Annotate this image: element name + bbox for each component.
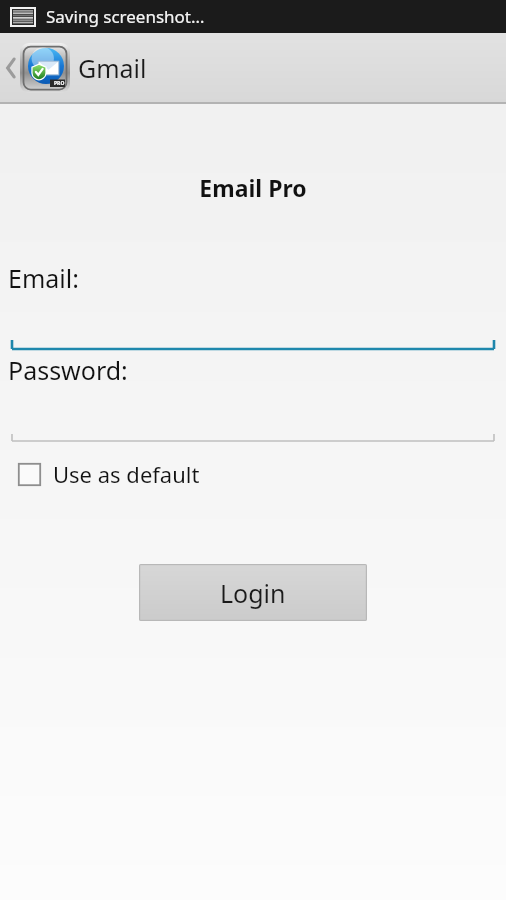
staticText: Email Pro [0, 172, 506, 203]
button[interactable]: PRO [0, 33, 506, 102]
staticText: Password: [8, 353, 128, 387]
staticText: Gmail [78, 51, 147, 85]
button[interactable] [0, 295, 506, 353]
staticText: Use as default [53, 459, 200, 489]
staticText: Saving screenshot… [46, 5, 205, 28]
button[interactable]: Login [139, 564, 367, 621]
staticText: Email: [8, 261, 79, 295]
button[interactable]: Use as default [14, 455, 204, 493]
button[interactable] [0, 387, 506, 445]
staticText: Login [220, 576, 286, 610]
staticText: PRO [54, 80, 65, 87]
